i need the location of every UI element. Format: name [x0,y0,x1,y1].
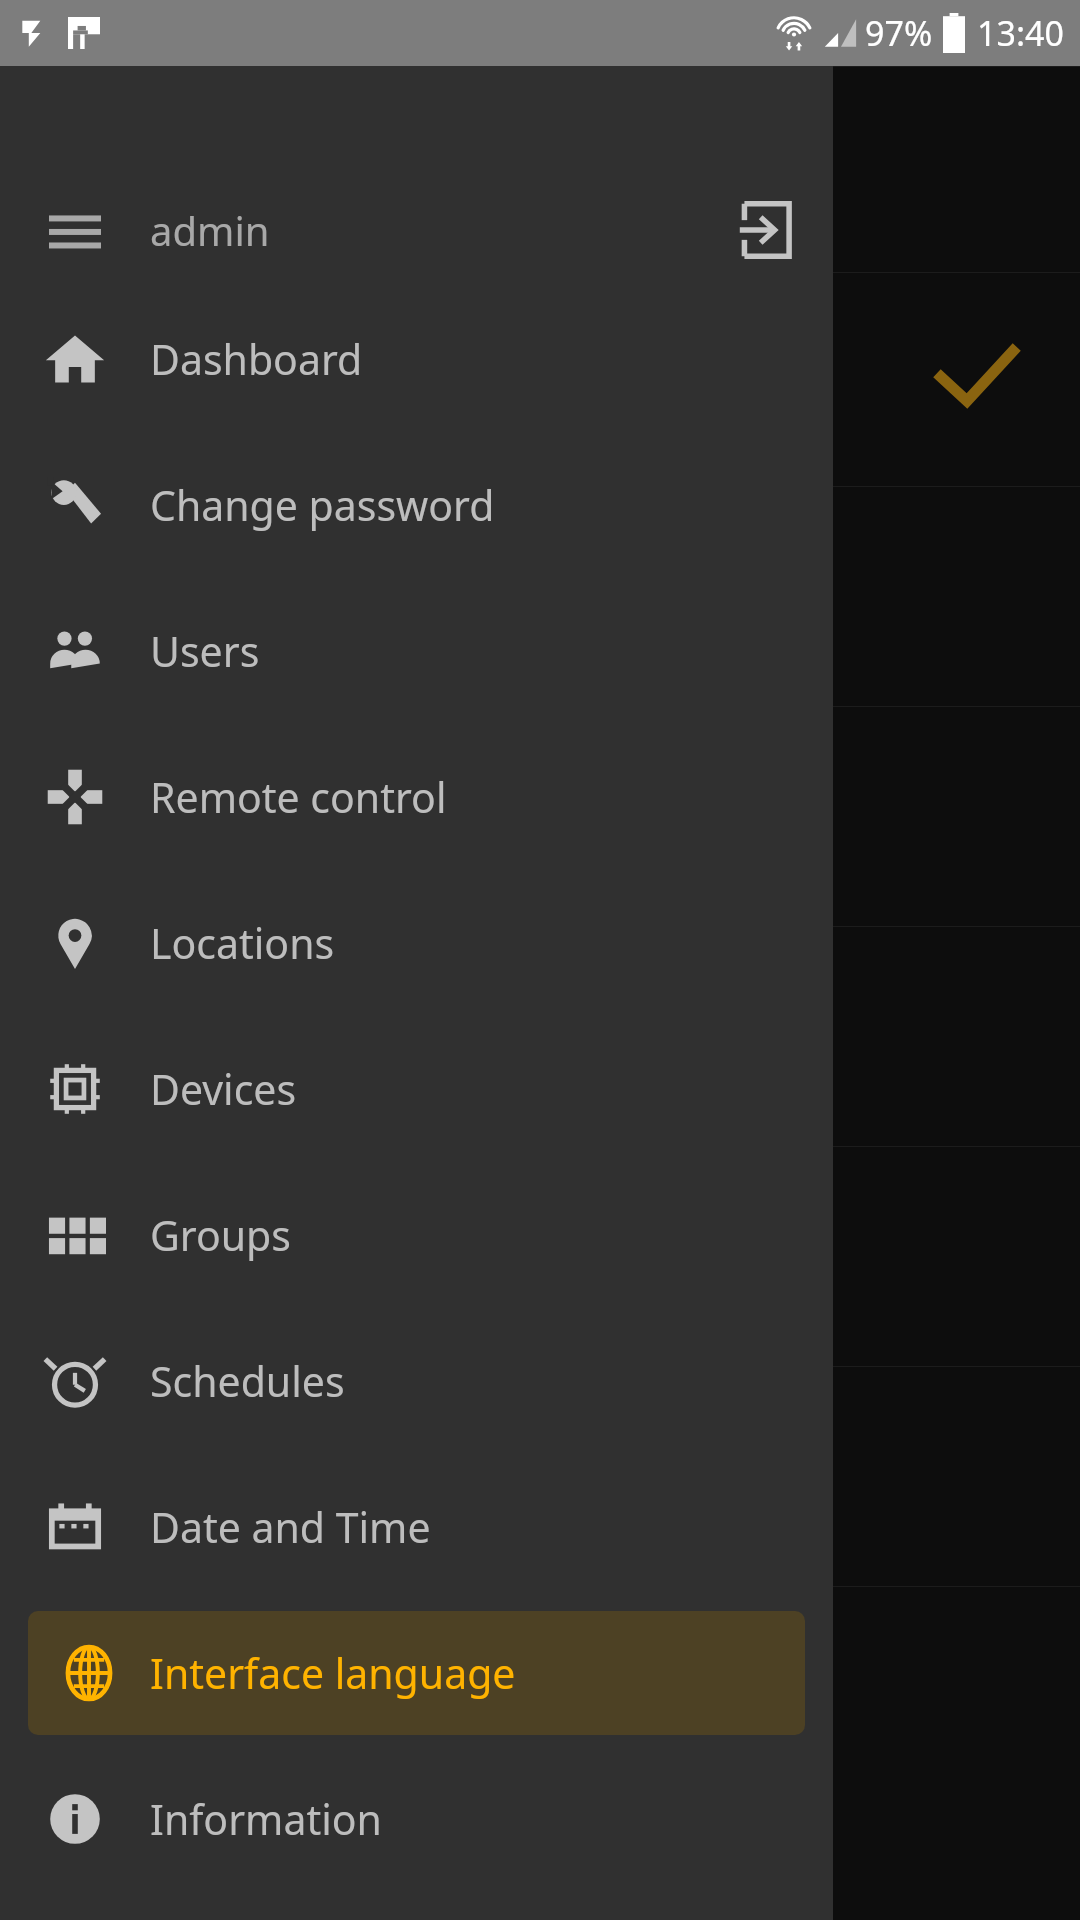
staticText: Interface language [150,1645,516,1701]
staticText: Devices [150,1061,297,1117]
button[interactable]: Interface language [28,1611,805,1735]
button[interactable]: Log out [693,174,833,286]
staticText: Information [150,1791,382,1847]
staticText: Change password [150,477,495,533]
button[interactable]: Locations [0,870,833,1016]
staticText: Schedules [150,1353,345,1409]
button[interactable]: Devices [0,1016,833,1162]
staticText: 97% [865,10,933,56]
button[interactable]: Date and Time [0,1454,833,1600]
staticText: Users [150,623,260,679]
staticText: Dashboard [150,331,363,387]
button[interactable]: Schedules [0,1308,833,1454]
staticText: Groups [150,1207,291,1263]
button[interactable]: Groups [0,1162,833,1308]
button[interactable]: Dashboard [0,286,833,432]
staticText: admin [150,203,693,257]
staticText: Remote control [150,769,447,825]
button[interactable]: Menu [0,174,150,286]
button[interactable]: Change password [0,432,833,578]
button[interactable]: Remote control [0,724,833,870]
staticText: Locations [150,915,335,971]
staticText: 13:40 [977,10,1064,56]
button[interactable]: Information [0,1746,833,1892]
staticText: Date and Time [150,1499,431,1555]
button[interactable]: Users [0,578,833,724]
